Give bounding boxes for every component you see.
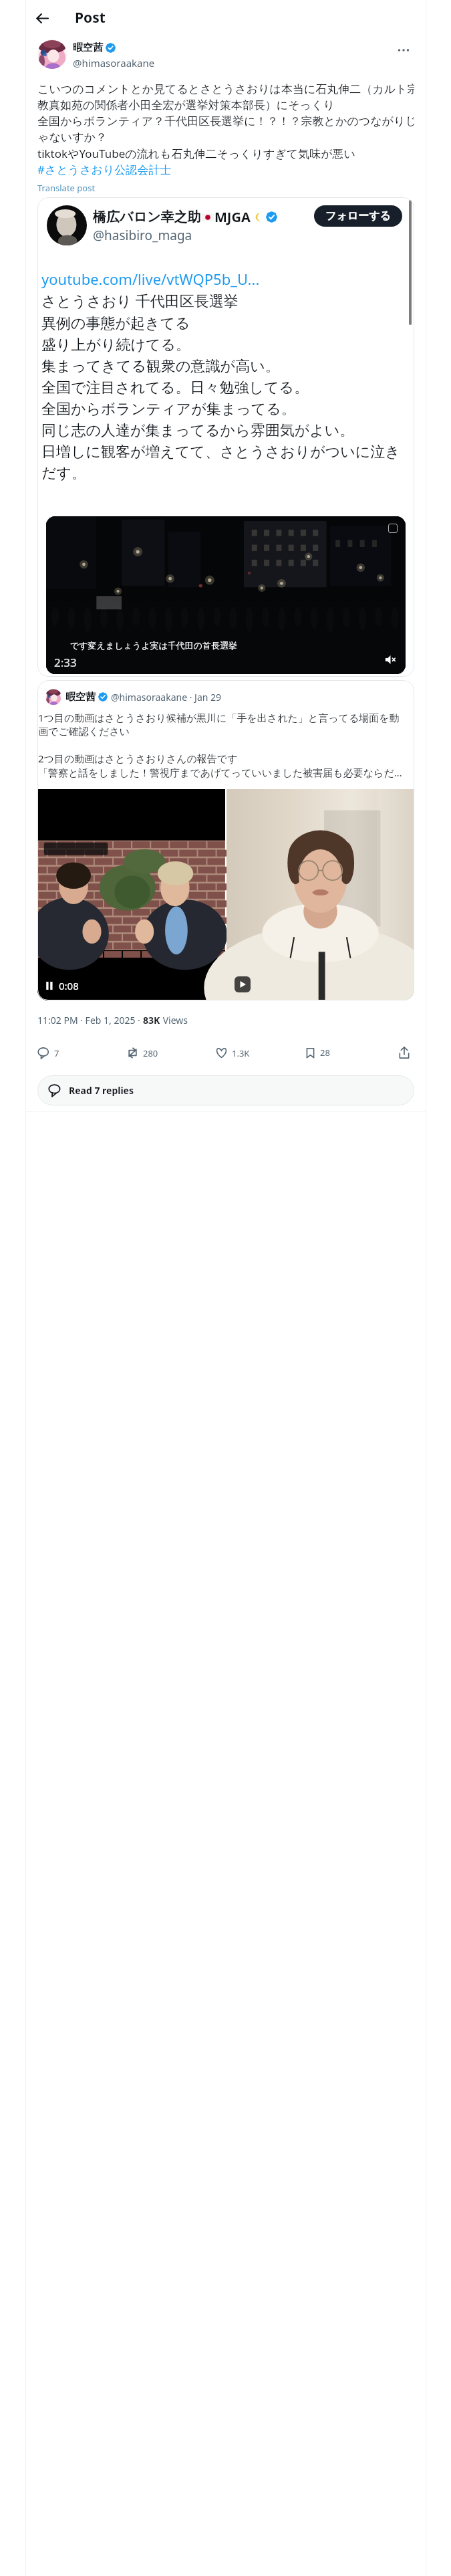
staticText: 7	[54, 1047, 59, 1059]
staticText: @himasoraakane · Jan 29	[111, 691, 222, 704]
staticText: 1つ目の動画はさとうさおり候補が黒川に「手を出された」と言ってる場面を動	[38, 711, 400, 725]
staticText: 同じ志の人達が集まってるから雰囲気がよい。	[41, 419, 355, 441]
staticText: Views	[160, 1014, 188, 1027]
button[interactable]: 1.3K	[215, 1047, 305, 1059]
staticText: だす。	[41, 462, 87, 484]
staticText: Translate post	[37, 182, 96, 194]
button[interactable]: 橋広バロン幸之助	[37, 197, 414, 677]
staticText: 11:02 PM · Feb 1, 2025 ·	[37, 1014, 143, 1027]
staticText: 0:08	[59, 979, 79, 992]
button[interactable]: Play video	[37, 789, 225, 1000]
staticText: @hasibiro_maga	[93, 227, 192, 244]
staticText: Post	[75, 8, 106, 27]
staticText: 集まってきてる観衆の意識が高い。	[41, 355, 280, 377]
button[interactable]: More options	[393, 39, 414, 61]
staticText: さとうさおり 千代田区長選挙	[41, 290, 239, 312]
staticText: 画でご確認ください	[38, 725, 130, 738]
staticText: ゃないすか？	[37, 129, 107, 145]
button[interactable]: 暇空茜	[37, 680, 414, 1000]
staticText: #さとうさおり公認会計士	[37, 161, 172, 177]
staticText: です変えましょうよ実は千代田の首長選挙	[70, 640, 238, 651]
staticText: MJGA	[214, 208, 251, 226]
button[interactable]: Play video	[227, 789, 414, 1000]
button[interactable]: Translate post	[37, 182, 96, 194]
staticText: 異例の事態が起きてる	[41, 312, 190, 334]
staticText: 83K	[143, 1014, 160, 1027]
staticText: 1.3K	[232, 1047, 250, 1059]
staticText: Read 7 replies	[69, 1084, 134, 1097]
staticText: 2:33	[54, 655, 77, 670]
staticText: @himasoraakane	[73, 56, 155, 70]
button[interactable]: Play video	[46, 516, 406, 674]
button[interactable]: 280	[126, 1047, 215, 1059]
staticText: 「警察と話をしました！警視庁まであげてっていいました被害届も必要ならだ...	[38, 766, 402, 780]
staticText: 暇空茜	[73, 41, 103, 54]
button[interactable]: Back	[29, 5, 55, 31]
staticText: 暇空茜	[65, 691, 96, 704]
staticText: 全国からボランティア？千代田区長選挙に！？！？宗教とかのつながりじ	[37, 113, 414, 129]
staticText: 教真如苑の関係者小田全宏が選挙対策本部長）にそっくり	[37, 97, 335, 113]
staticText: 橋広バロン幸之助	[93, 209, 201, 225]
staticText: 全国で注目されてる。日々勉強してる。	[41, 377, 309, 398]
staticText: 2つ目の動画はさとうさおりさんの報告です	[38, 752, 238, 766]
staticText: tiktokやYouTubeの流れも石丸伸二そっくりすぎて気味が悪い	[37, 145, 355, 161]
staticText: 全国からボランティアが集まってる。	[41, 398, 296, 419]
button[interactable]: Share	[394, 1043, 414, 1063]
staticText: フォローする	[325, 209, 391, 223]
button[interactable]: 28	[305, 1047, 394, 1059]
staticText: 28	[320, 1047, 330, 1059]
staticText: 日増しに観客が増えてて、さとうさおりがついに泣き	[41, 441, 400, 462]
staticText: youtube.com/live/vtWQP5b_U...	[41, 268, 260, 290]
staticText: こいつのコメントとか見てるとさとうさおりは本当に石丸伸二（カルト宗	[37, 81, 414, 97]
button[interactable]: 7	[37, 1047, 126, 1059]
button[interactable]: Read 7 replies	[37, 1075, 414, 1105]
button[interactable]: フォローする	[314, 205, 402, 227]
staticText: 280	[143, 1047, 158, 1059]
staticText: 盛り上がり続けてる。	[41, 334, 191, 355]
